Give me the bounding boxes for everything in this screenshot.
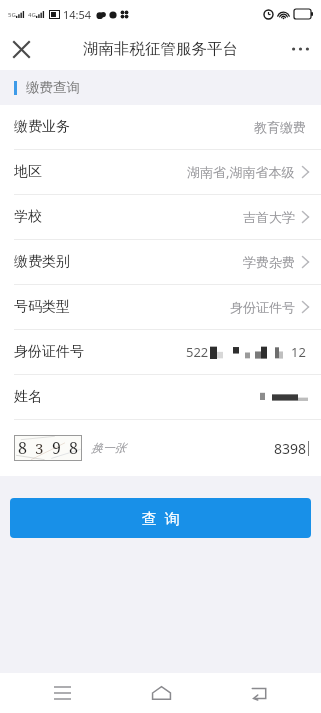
button[interactable]: Close [0, 28, 42, 70]
button[interactable]: Home [139, 673, 183, 713]
button[interactable]: Captcha image, tap to refresh [14, 435, 82, 461]
button[interactable]: 姓名 [0, 375, 321, 419]
staticText: 12 [291, 343, 306, 361]
staticText: 3 [35, 438, 44, 458]
staticText: 4G [28, 11, 36, 19]
button[interactable]: 换一张 [91, 441, 126, 455]
button[interactable]: More options [279, 28, 321, 70]
staticText: 缴费类别 [14, 253, 70, 271]
staticText: 教育缴费 [254, 119, 306, 135]
staticText: 缴费业务 [14, 118, 70, 136]
staticText: 身份证件号 [14, 343, 84, 361]
staticText: 8 [69, 437, 78, 459]
staticText: 地区 [14, 163, 42, 181]
staticText: 5G [8, 11, 16, 19]
button[interactable]: 查 询 [10, 498, 311, 538]
staticText: 学费杂费 [243, 254, 295, 270]
staticText: 湖南非税征管服务平台 [83, 39, 238, 59]
button[interactable]: Back [237, 673, 281, 713]
button[interactable]: 身份证件号 [0, 330, 321, 374]
staticText: 查 询 [142, 508, 180, 528]
staticText: 吉首大学 [243, 209, 295, 225]
staticText: 14:54 [63, 7, 92, 22]
staticText: 9 [52, 437, 61, 459]
button[interactable]: Recent apps [40, 673, 84, 713]
staticText: 522 [186, 343, 209, 361]
staticText: 8398 [274, 439, 307, 458]
button[interactable]: 缴费业务 [0, 105, 321, 149]
staticText: 缴费查询 [26, 79, 80, 96]
staticText: 湖南省,湖南省本级 [187, 163, 295, 181]
staticText: 身份证件号 [230, 299, 295, 315]
staticText: 姓名 [14, 388, 42, 406]
staticText: 换一张 [91, 441, 126, 455]
button[interactable]: 学校 [0, 195, 321, 239]
button[interactable]: 号码类型 [0, 285, 321, 329]
button[interactable]: 地区 [0, 150, 321, 194]
staticText: 8 [18, 437, 27, 459]
button[interactable]: 缴费类别 [0, 240, 321, 284]
staticText: 号码类型 [14, 298, 70, 316]
staticText: 学校 [14, 208, 42, 226]
